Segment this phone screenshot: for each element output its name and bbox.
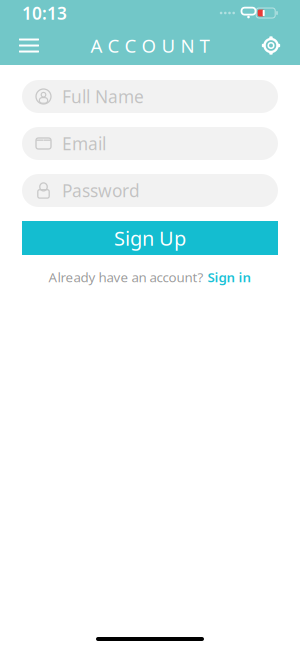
staticText: 10:13 [22,1,67,24]
staticText: Full Name [62,85,144,108]
button[interactable]: Already have an account? [22,269,278,285]
button[interactable]: Sign Up [22,221,278,255]
staticText: Password [62,179,140,202]
button[interactable]: Settings [254,29,288,61]
button[interactable]: Menu [12,29,46,61]
staticText: Sign Up [114,225,186,251]
staticText: Sign in [207,268,251,286]
staticText: Already have an account? [48,268,203,286]
staticText: A C C O U N T [90,33,209,58]
staticText: Email [62,132,106,155]
